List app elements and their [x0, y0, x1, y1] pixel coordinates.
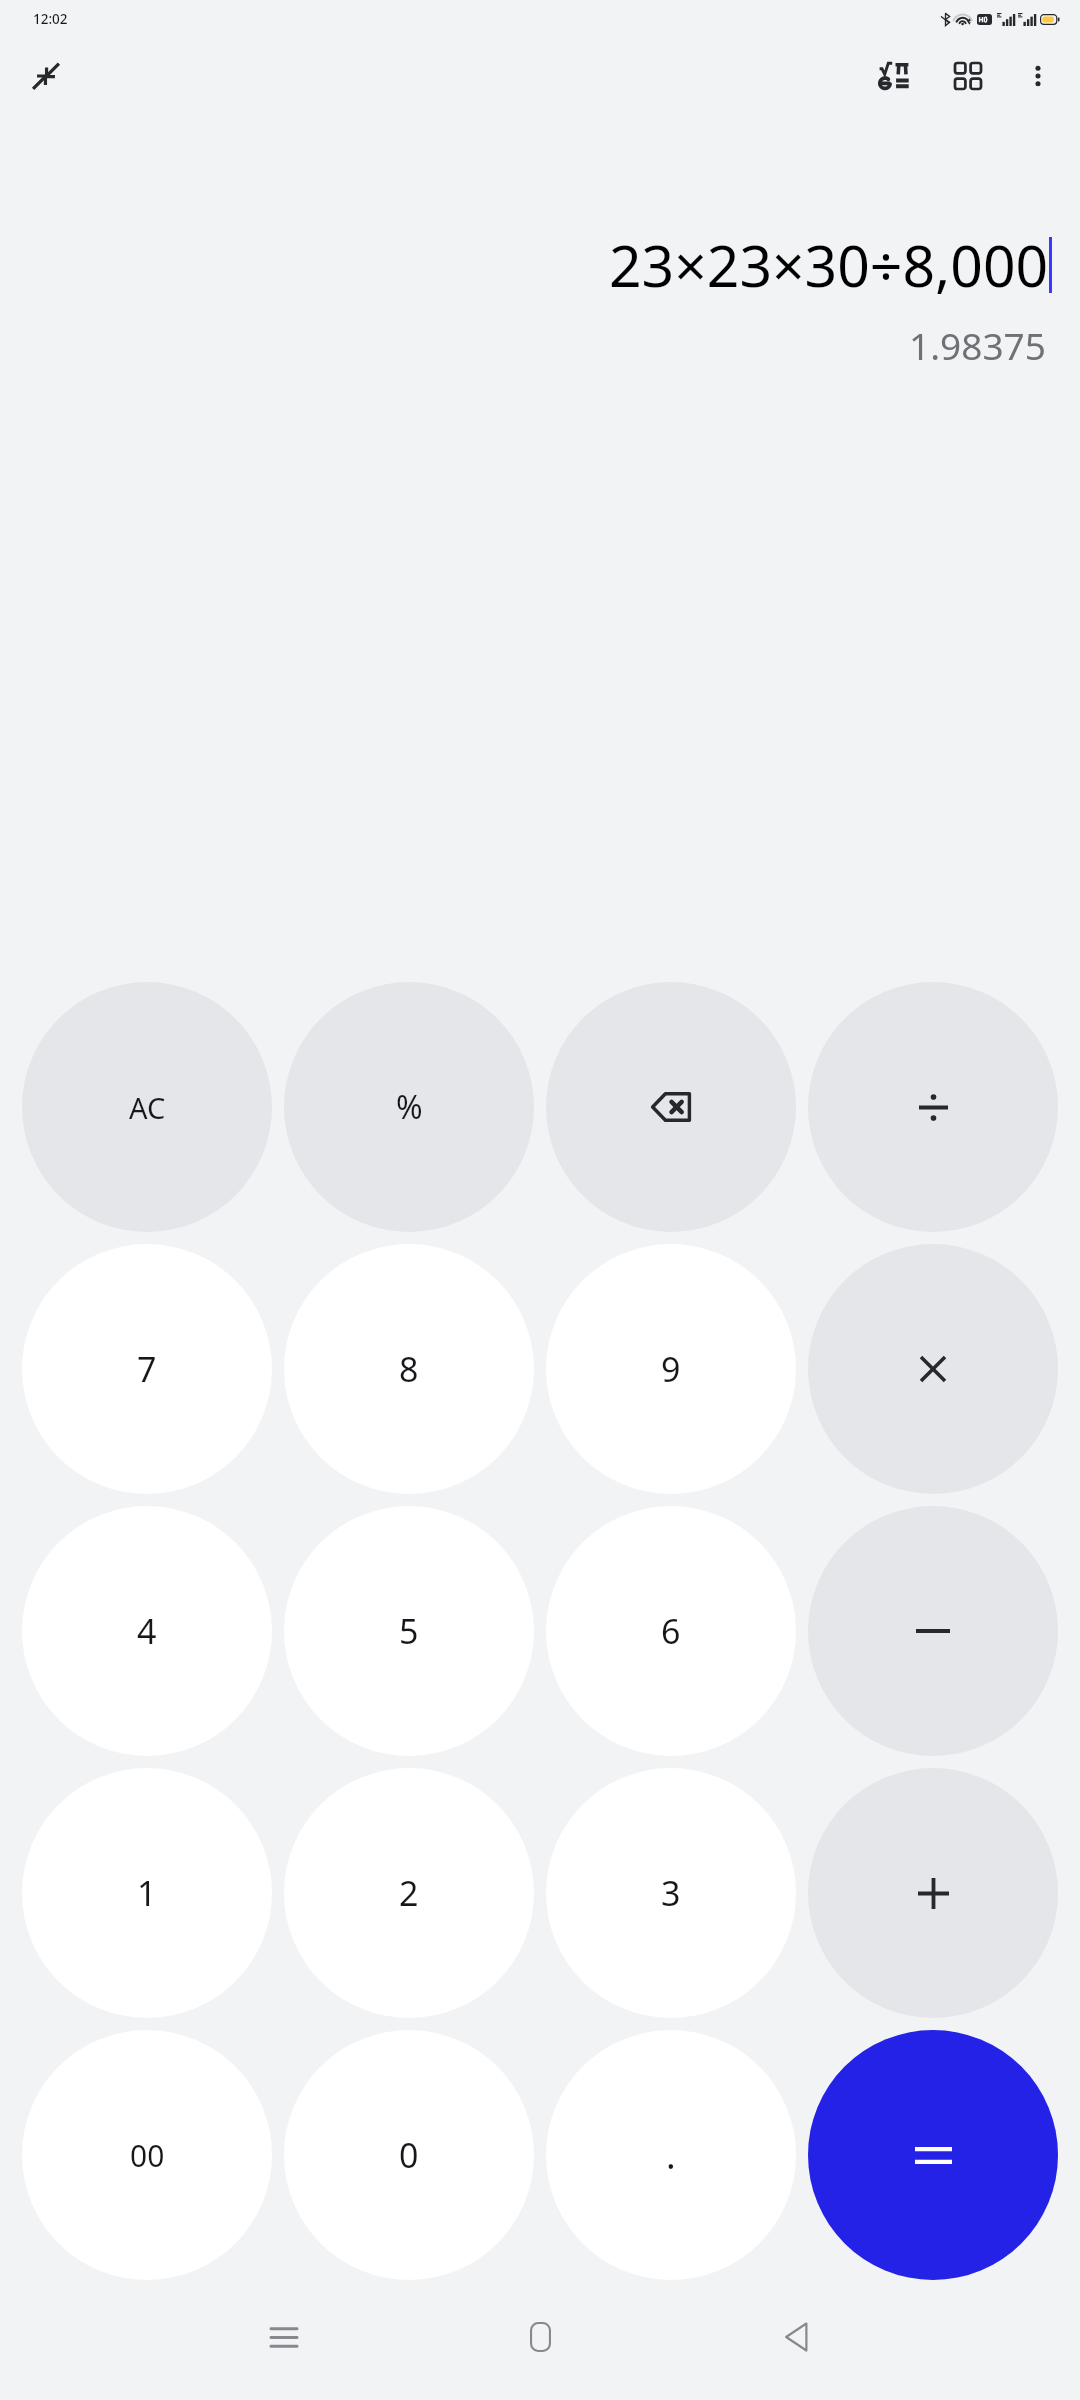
button[interactable]: Unit converter — [936, 44, 1000, 108]
staticText: 5 — [399, 1608, 419, 1654]
staticText: 6 — [661, 1608, 681, 1654]
button[interactable]: More options — [1006, 44, 1070, 108]
button[interactable]: 4 — [22, 1506, 272, 1756]
button[interactable]: Add — [808, 1768, 1058, 2018]
button[interactable]: % — [284, 982, 534, 1232]
button[interactable]: 8 — [284, 1244, 534, 1494]
button[interactable]: Home — [497, 2294, 583, 2380]
button[interactable]: Back — [753, 2294, 839, 2380]
button[interactable]: 3 — [546, 1768, 796, 2018]
button[interactable]: Equals — [808, 2030, 1058, 2280]
staticText: 9 — [661, 1346, 681, 1392]
staticText: % — [396, 1085, 423, 1129]
button[interactable]: Collapse — [14, 44, 78, 108]
button[interactable]: Recents — [241, 2294, 327, 2380]
button[interactable]: 9 — [546, 1244, 796, 1494]
button[interactable]: 5 — [284, 1506, 534, 1756]
staticText: 4 — [137, 1608, 157, 1654]
staticText: AC — [129, 1088, 166, 1127]
staticText: . — [666, 2131, 676, 2180]
staticText: 1 — [137, 1870, 157, 1916]
staticText: 00 — [130, 2135, 165, 2176]
button[interactable]: . — [546, 2030, 796, 2280]
staticText: 1.98375 — [909, 320, 1046, 370]
staticText: 3 — [661, 1870, 681, 1916]
button[interactable]: 0 — [284, 2030, 534, 2280]
button[interactable]: 00 — [22, 2030, 272, 2280]
staticText: 7 — [137, 1346, 157, 1392]
staticText: 8 — [399, 1346, 419, 1392]
staticText: 23×23×30÷8,000 — [609, 226, 1049, 304]
staticText: 0 — [399, 2132, 419, 2178]
button[interactable]: Backspace — [546, 982, 796, 1232]
button[interactable]: 7 — [22, 1244, 272, 1494]
button[interactable]: AC — [22, 982, 272, 1232]
button[interactable]: 1 — [22, 1768, 272, 2018]
button[interactable]: Scientific calculator — [862, 44, 926, 108]
button[interactable]: Divide — [808, 982, 1058, 1232]
button[interactable]: Subtract — [808, 1506, 1058, 1756]
staticText: 12:02 — [33, 10, 68, 28]
staticText: 2 — [399, 1870, 419, 1916]
button[interactable]: Multiply — [808, 1244, 1058, 1494]
button[interactable]: 6 — [546, 1506, 796, 1756]
button[interactable]: 2 — [284, 1768, 534, 2018]
